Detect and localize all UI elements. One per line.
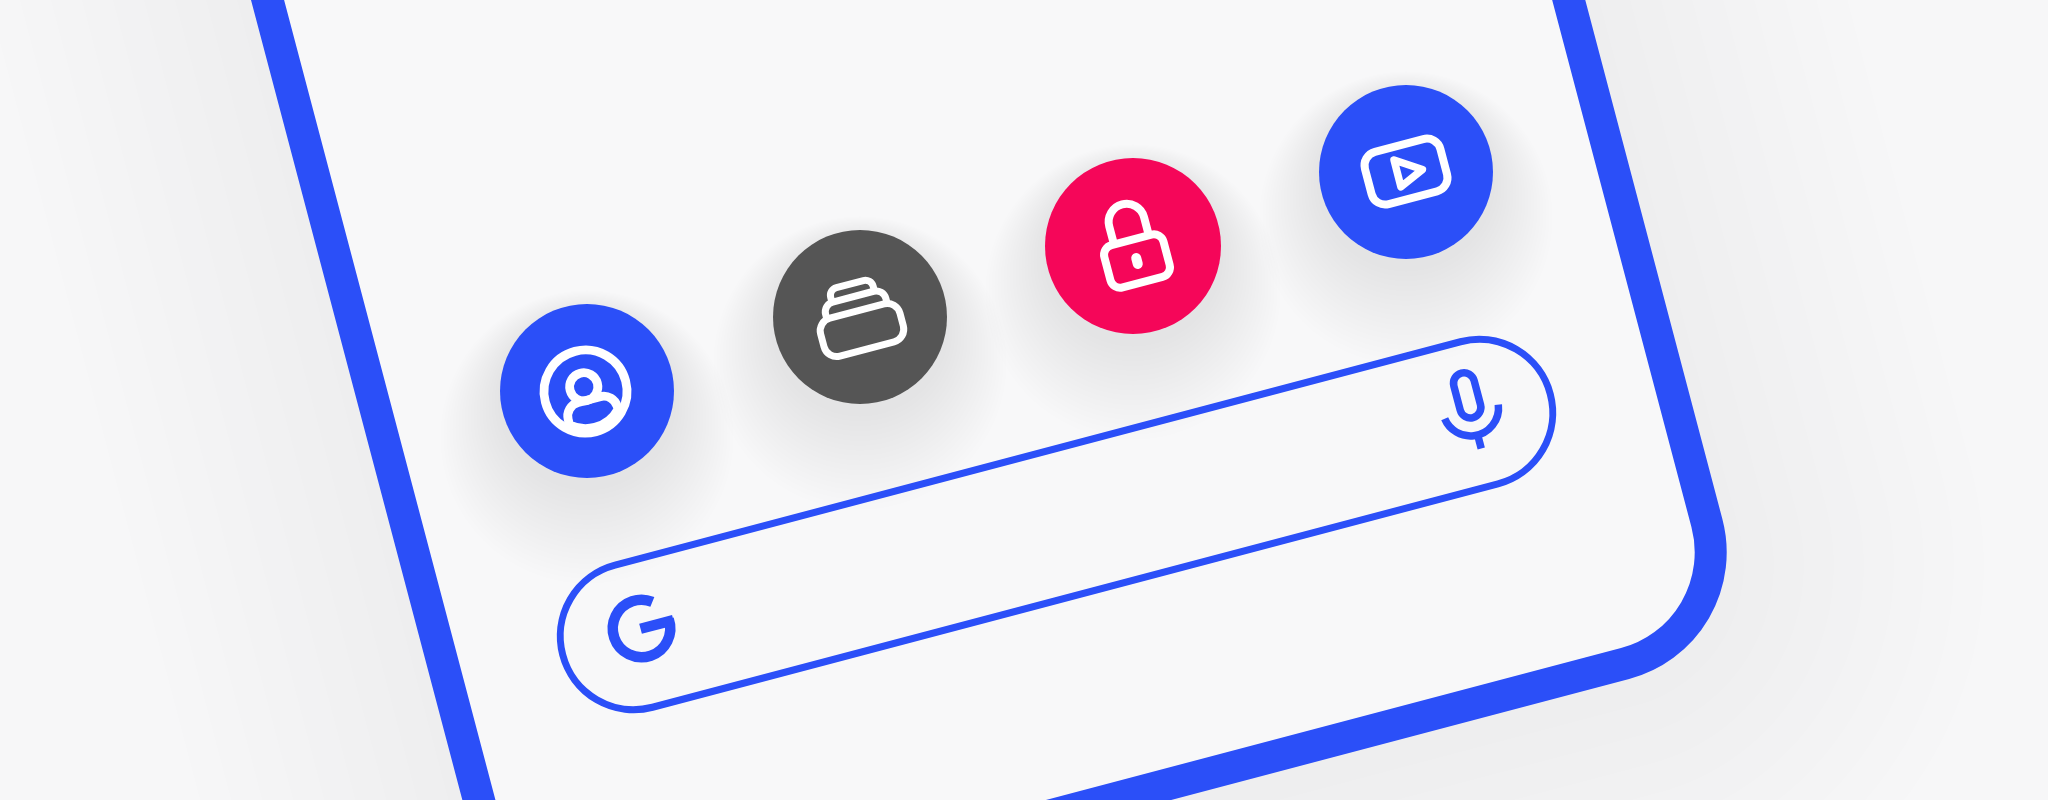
button[interactable]: Search with Google	[553, 330, 1563, 712]
button[interactable]: Privacy lock	[1045, 158, 1221, 334]
button[interactable]: Wallet cards	[773, 230, 947, 404]
button[interactable]: Play video	[1319, 85, 1493, 259]
button[interactable]: Account	[500, 304, 674, 478]
